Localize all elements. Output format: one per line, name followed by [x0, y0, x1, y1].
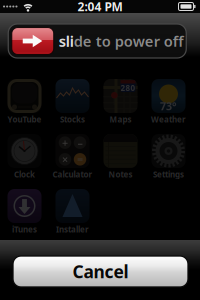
staticText: sli [59, 31, 74, 51]
staticText: Maps [109, 114, 131, 125]
staticText: Installer [56, 224, 89, 235]
button[interactable]: Slide to power off [12, 27, 54, 54]
staticText: = [77, 152, 83, 166]
staticText: – [77, 136, 82, 150]
staticText: slide to power off [59, 31, 184, 51]
staticText: + [62, 136, 68, 150]
staticText: Clock [14, 169, 35, 180]
button[interactable]: Cancel [13, 256, 188, 287]
staticText: Settings [153, 169, 184, 180]
staticText: 73° [160, 99, 177, 113]
staticText: YouTube [7, 114, 41, 125]
staticText: Stocks [60, 114, 85, 125]
staticText: × [62, 152, 68, 166]
staticText: Cancel [72, 260, 128, 283]
staticText: Notes [108, 169, 132, 180]
staticText: iTunes [12, 224, 37, 235]
staticText: Weather [151, 114, 186, 125]
staticText: 2:04 PM [77, 0, 122, 14]
staticText: 280 [120, 83, 135, 93]
staticText: Calculator [52, 169, 92, 180]
